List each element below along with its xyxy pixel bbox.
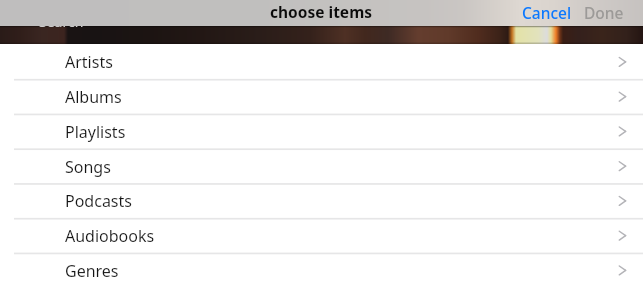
button[interactable]: Albums [0, 79, 643, 114]
staticText: Search [39, 12, 84, 31]
button[interactable]: Done [577, 0, 631, 25]
button[interactable]: Podcasts [0, 183, 643, 218]
staticText: Podcasts [65, 190, 132, 212]
staticText: Songs [65, 156, 111, 178]
button[interactable]: Artists [0, 44, 643, 79]
button[interactable]: Genres [0, 253, 643, 288]
staticText: Genres [65, 260, 119, 282]
button[interactable]: Songs [0, 149, 643, 184]
button[interactable]: Cancel [515, 0, 579, 25]
staticText: Done [584, 2, 624, 22]
staticText: Artists [65, 51, 113, 73]
staticText: Albums [65, 86, 122, 108]
staticText: Playlists [65, 121, 126, 143]
staticText: Cancel [522, 2, 572, 22]
staticText: Audiobooks [65, 225, 155, 247]
button[interactable]: Playlists [0, 114, 643, 149]
staticText: choose items [270, 1, 373, 22]
button[interactable]: Audiobooks [0, 218, 643, 253]
